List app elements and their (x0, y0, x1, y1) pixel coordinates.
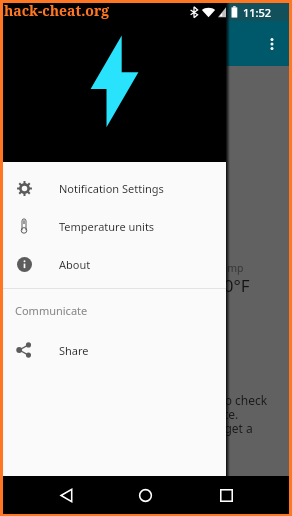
button[interactable]: Notification Settings (3, 169, 226, 207)
button[interactable]: Home (127, 476, 163, 514)
staticText: hack-cheat.org (4, 1, 110, 20)
button[interactable]: More options (257, 29, 287, 59)
button[interactable]: Back (48, 476, 84, 514)
staticText: Share (59, 343, 89, 358)
button[interactable]: Temperature units (3, 207, 226, 245)
button[interactable]: About (3, 245, 226, 283)
staticText: Current temp (177, 261, 244, 275)
staticText: Notification Settings (59, 181, 164, 196)
button[interactable]: Share (3, 331, 226, 369)
staticText: 40°F (214, 274, 250, 297)
staticText: 11:52 (243, 5, 272, 20)
staticText: Temperature units (59, 219, 155, 234)
staticText: Tap refresh to check for the update. and… (154, 392, 268, 436)
staticText: Communicate (15, 303, 88, 318)
staticText: About (59, 257, 91, 272)
button[interactable]: Recent apps (208, 476, 244, 514)
